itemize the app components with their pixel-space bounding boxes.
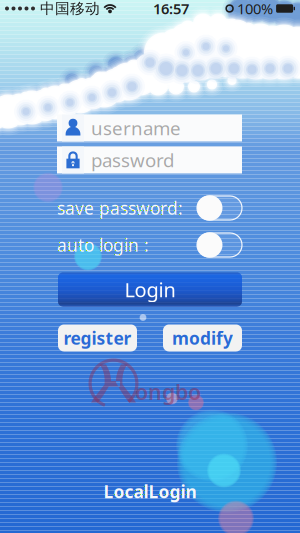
button[interactable]: LocalLogin [0,481,300,501]
staticText: password [91,148,174,172]
staticText: Login [124,276,175,303]
button[interactable]: Login [0,272,242,306]
staticText: username [91,116,181,140]
staticText: 16:57 [153,0,189,18]
button[interactable]: password [0,146,242,173]
staticText: auto login : [57,233,149,256]
button[interactable]: save password: [197,195,242,221]
button[interactable]: username [0,114,242,141]
button[interactable]: register [58,324,137,351]
staticText: register [63,326,131,349]
staticText: save password: [57,196,183,219]
button[interactable]: auto login : [197,232,242,258]
staticText: modify [172,326,233,349]
staticText: 中国移动 [40,0,100,17]
staticText: LocalLogin [103,480,196,503]
button[interactable]: modify [163,324,242,351]
staticText: 100% [237,0,273,18]
staticText: ongbo [135,377,201,406]
